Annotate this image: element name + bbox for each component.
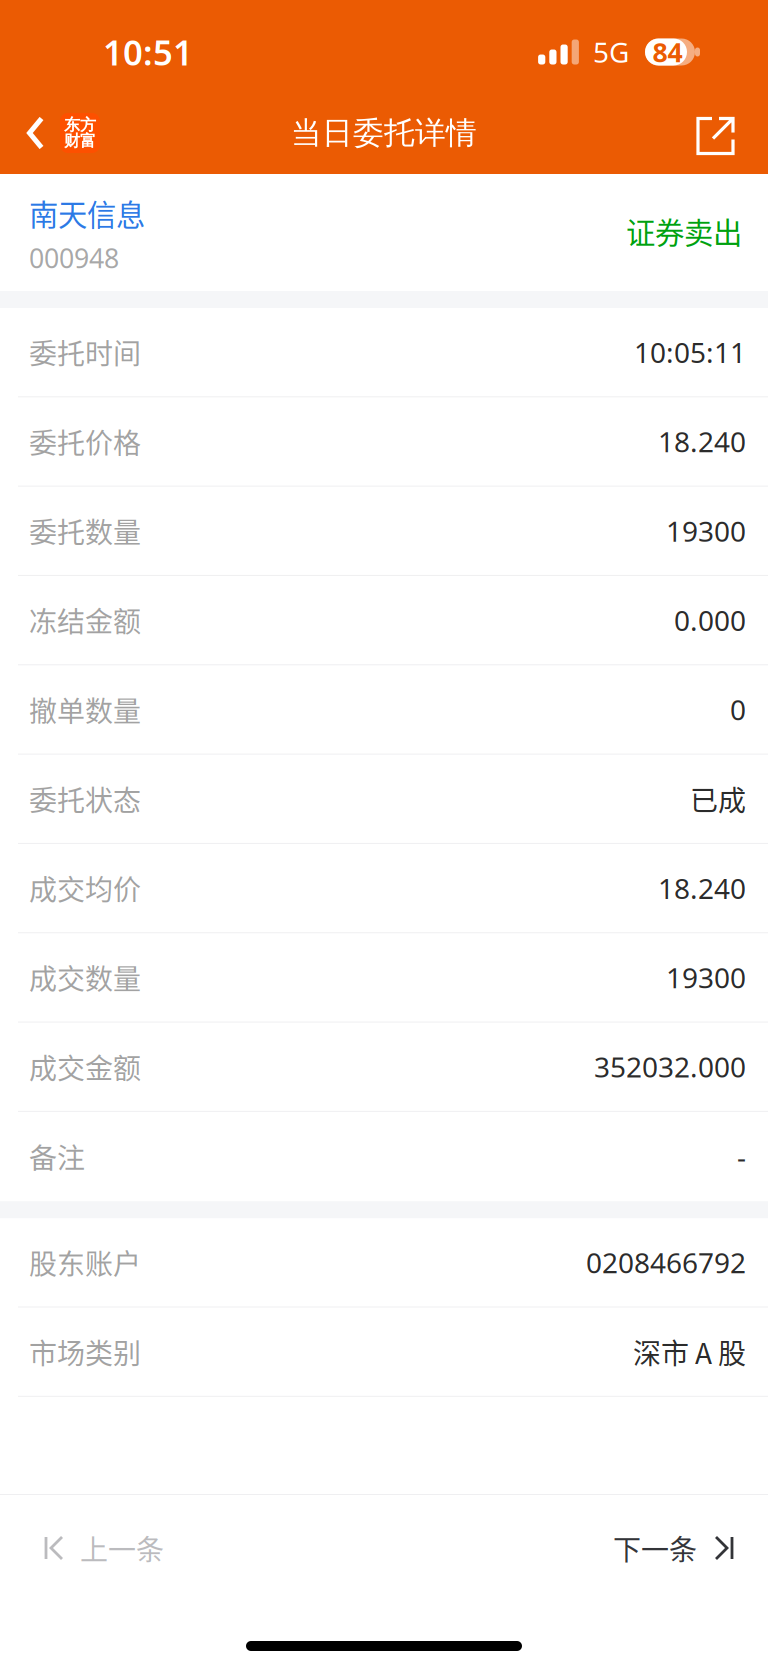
button[interactable]: 返回 东方财富 [0, 92, 114, 174]
staticText: 10:51 [103, 29, 193, 75]
staticText: - [737, 1138, 746, 1175]
staticText: 352032.000 [594, 1048, 746, 1085]
staticText: 股东账户 [29, 1242, 141, 1283]
staticText: 财富 [64, 131, 96, 151]
button[interactable]: 下一条 [583, 1495, 768, 1627]
staticText: 成交均价 [29, 868, 141, 908]
staticText: 000948 [29, 240, 119, 276]
staticText: 成交金额 [29, 1046, 141, 1087]
staticText: 成交数量 [29, 957, 141, 998]
staticText: 委托时间 [29, 332, 141, 372]
staticText: 东方 [64, 115, 96, 135]
button[interactable]: 分享 [674, 92, 768, 174]
staticText: 10:05:11 [634, 334, 746, 371]
staticText: 0208466792 [586, 1244, 746, 1281]
staticText: 南天信息 [29, 192, 145, 234]
staticText: 委托价格 [29, 421, 141, 462]
button[interactable]: 上一条 [0, 1495, 194, 1627]
staticText: 市场类别 [29, 1331, 141, 1372]
staticText: 0 [730, 691, 746, 728]
staticText: 委托状态 [29, 778, 141, 819]
staticText: 当日委托详情 [291, 114, 477, 152]
staticText: 撤单数量 [29, 689, 141, 730]
staticText: 已成 [690, 778, 746, 819]
staticText: 证券卖出 [626, 210, 742, 252]
staticText: 备注 [29, 1136, 85, 1177]
staticText: 84 [652, 34, 682, 70]
staticText: 19300 [666, 512, 746, 549]
staticText: 0.000 [674, 601, 746, 639]
staticText: 冻结金额 [29, 600, 141, 640]
staticText: 委托数量 [29, 510, 141, 551]
staticText: 深市 A 股 [633, 1331, 746, 1372]
staticText: 下一条 [613, 1528, 697, 1568]
staticText: 18.240 [658, 869, 746, 907]
staticText: 19300 [666, 959, 746, 996]
staticText: 5G [593, 33, 629, 71]
staticText: 上一条 [80, 1528, 164, 1568]
staticText: 18.240 [658, 423, 746, 460]
